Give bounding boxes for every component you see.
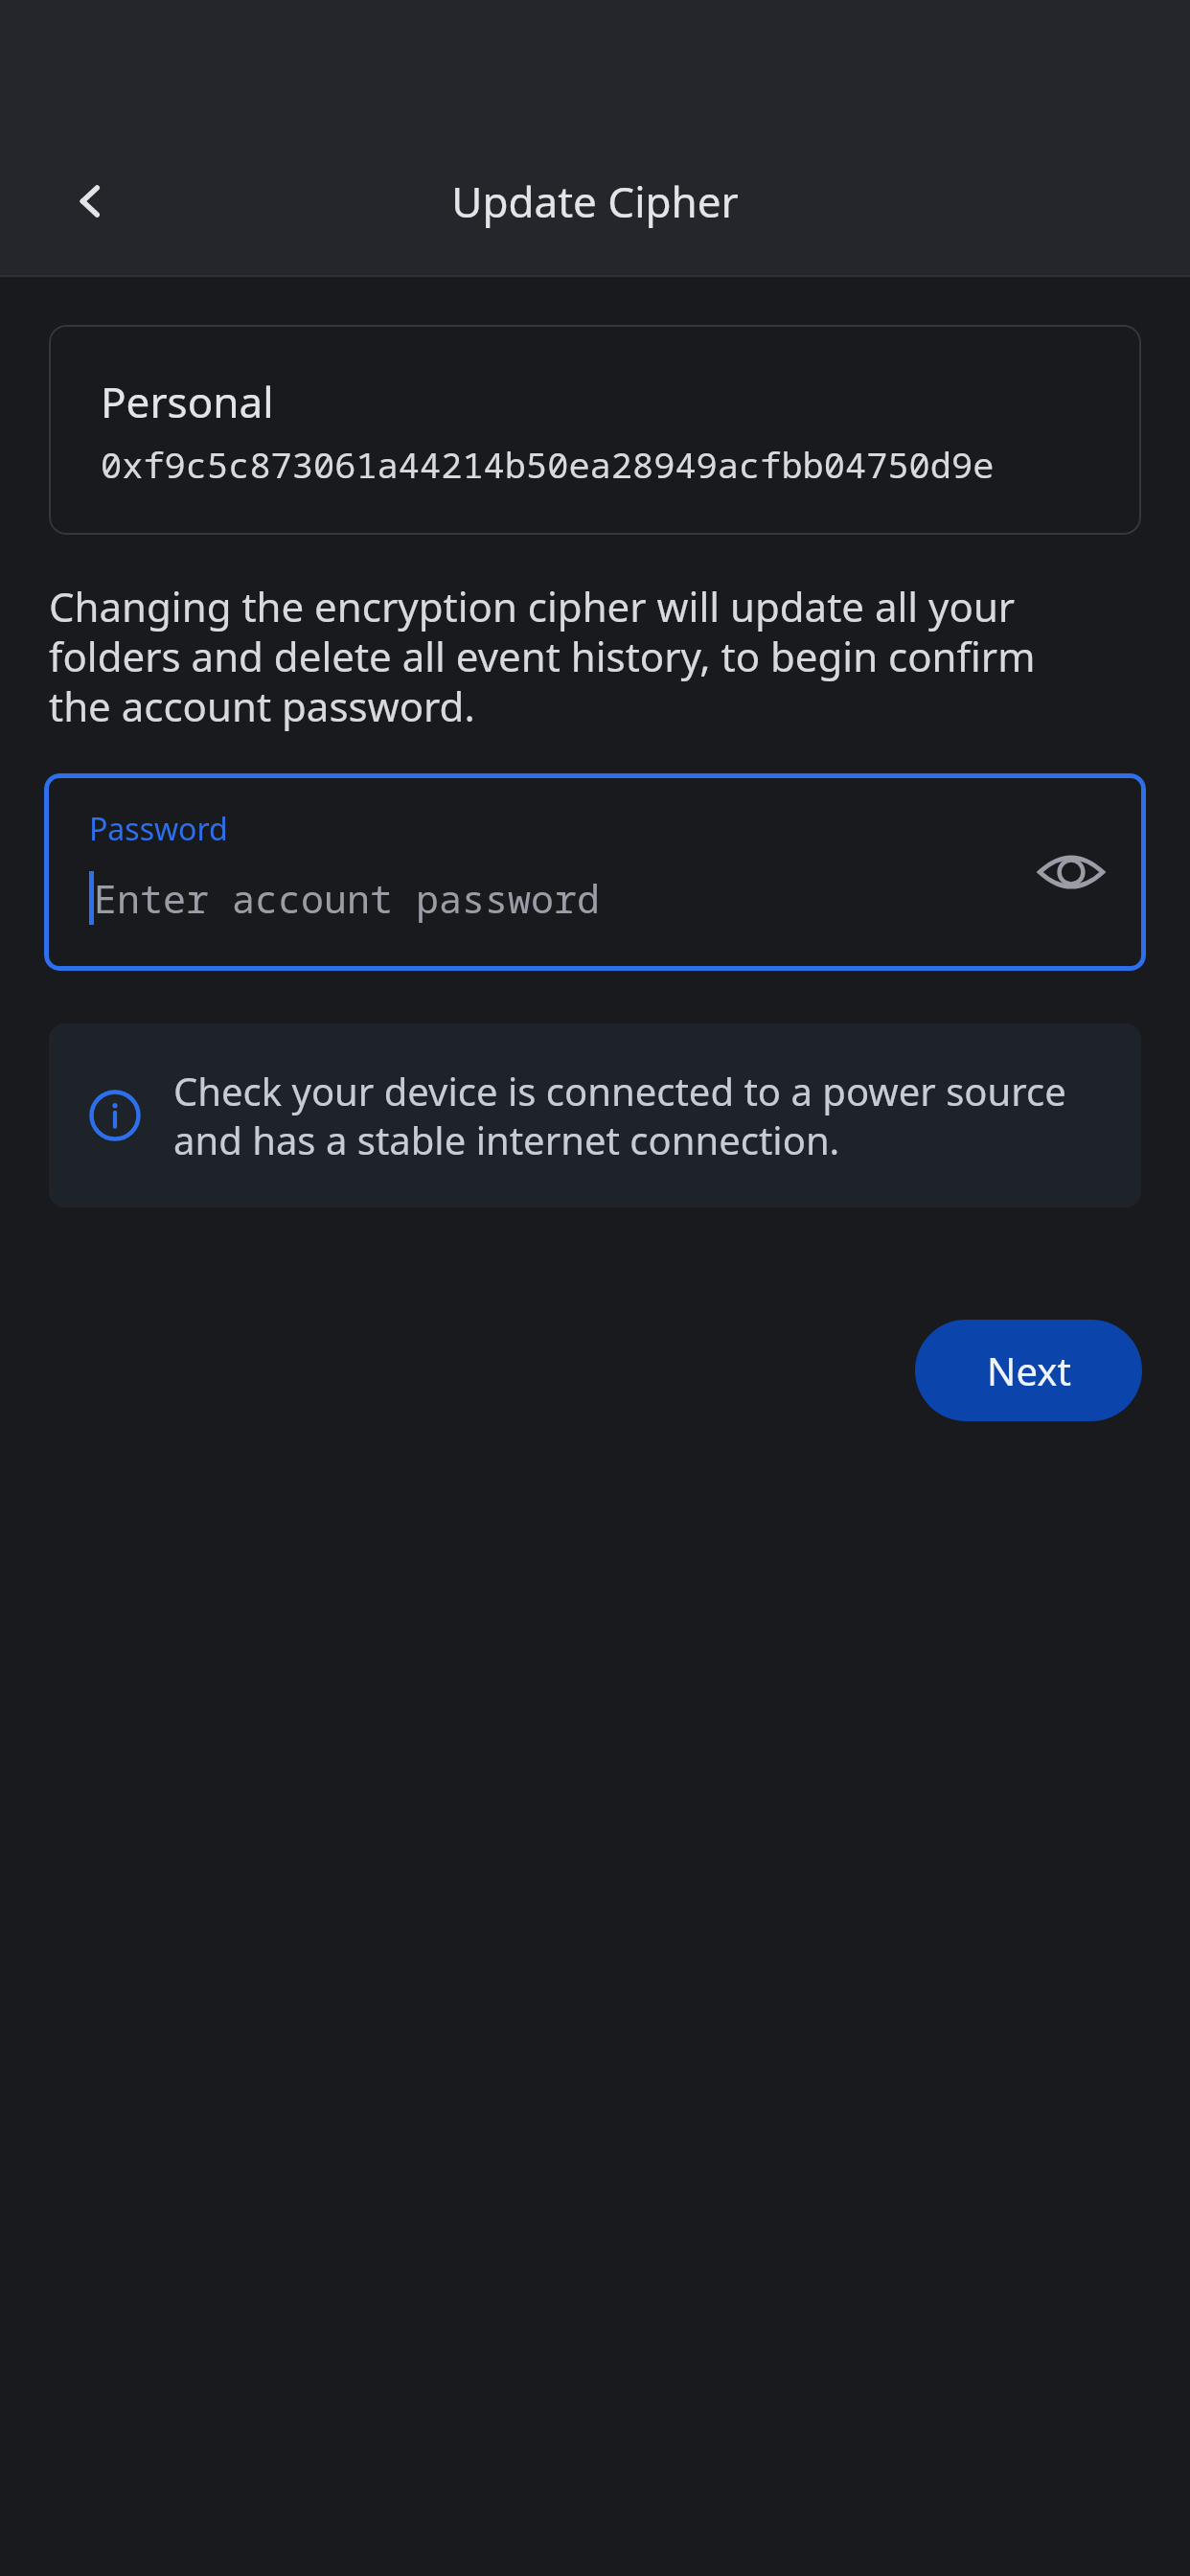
staticText: Password [89, 808, 228, 850]
staticText: Enter account password [94, 872, 600, 924]
button[interactable]: Next [915, 1320, 1142, 1421]
button[interactable]: Personal [49, 325, 1141, 535]
staticText: Update Cipher [451, 172, 739, 230]
staticText: Changing the encryption cipher will upda… [49, 579, 1056, 733]
button[interactable]: Back [46, 155, 138, 247]
button[interactable]: Check your device is connected to a powe… [49, 1023, 1141, 1207]
button[interactable]: Show password [1027, 828, 1115, 916]
button[interactable]: Password [44, 773, 1146, 971]
staticText: Check your device is connected to a powe… [173, 1065, 1099, 1166]
staticText: 0xf9c5c873061a44214b50ea28949acfbb04750d… [101, 440, 995, 488]
staticText: Personal [101, 373, 274, 430]
staticText: Next [987, 1345, 1071, 1396]
